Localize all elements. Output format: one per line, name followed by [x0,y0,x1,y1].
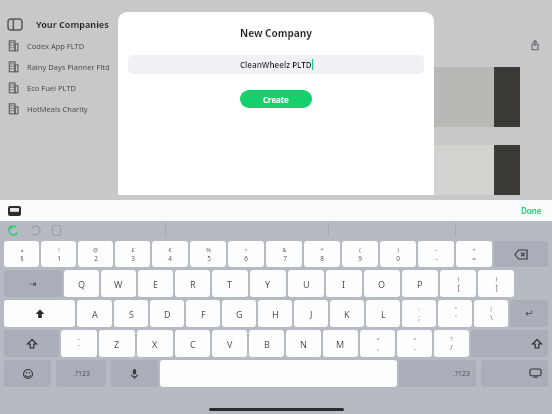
button[interactable]: | [474,300,508,327]
button[interactable]: .?123 [56,360,106,387]
staticText: 7 [283,254,287,263]
button[interactable]: W [101,270,136,297]
staticText: 8 [320,254,324,263]
staticText: – [435,246,438,253]
button[interactable]: Return [510,300,548,327]
staticText: F [201,308,206,320]
other: Keyboard [8,206,21,216]
button[interactable]: V [212,330,247,357]
button[interactable]: Redo [30,225,41,236]
button[interactable]: Paste [52,225,61,236]
button[interactable]: R [175,270,210,297]
button[interactable]: H [258,300,292,327]
button[interactable]: @ [78,241,113,267]
button[interactable]: % [190,241,226,267]
button[interactable]: { [440,270,476,297]
button[interactable]: Hide keyboard [481,360,548,387]
button[interactable]: ? [434,330,469,357]
button[interactable]: Create [240,90,312,108]
staticText: 9 [358,254,362,263]
button[interactable]: Codex App FLTD [0,35,133,56]
button[interactable]: F [186,300,220,327]
button[interactable]: .?123 [399,360,476,387]
button[interactable]: D [150,300,184,327]
button[interactable]: – [418,241,454,267]
button[interactable]: Q [64,270,99,297]
staticText: I [342,278,346,290]
button[interactable]: A [77,300,112,327]
staticText: B [264,338,270,350]
button[interactable]: } [478,270,514,297]
button[interactable]: Caps lock [4,300,75,327]
button[interactable]: Eco Fuel PLTD [0,77,133,98]
staticText: + [118,16,125,32]
button[interactable]: £ [115,241,150,267]
button[interactable]: ( [342,241,378,267]
button[interactable]: ) [380,241,416,267]
staticText: U [303,278,310,290]
staticText: % [206,246,211,253]
button[interactable]: X [137,330,173,357]
button[interactable]: ^ [228,241,264,267]
staticText: ↵ [525,308,534,320]
button[interactable]: : [402,300,436,327]
other: Share [530,40,540,50]
button[interactable]: < [360,330,395,357]
button[interactable]: ! [41,241,76,267]
button[interactable]: Backspace [494,241,548,267]
button[interactable]: 0.63 [141,67,520,127]
staticText: @ [93,246,98,253]
button[interactable]: U [288,270,324,297]
button[interactable]: N [286,330,321,357]
button[interactable]: L [366,300,400,327]
button[interactable]: ~ [61,330,97,357]
button[interactable]: C [175,330,210,357]
staticText: A [92,308,98,320]
button[interactable]: S [114,300,148,327]
staticText: N [300,338,307,350]
staticText: ! [58,246,60,253]
button[interactable]: CleanWheelz PLTD [128,55,424,74]
button[interactable]: G [222,300,256,327]
staticText: Your Companies [36,18,109,30]
button[interactable]: K [330,300,364,327]
button[interactable]: + [456,241,492,267]
button[interactable]: Shift [4,330,59,357]
button[interactable]: * [304,241,340,267]
button[interactable]: " [438,300,472,327]
button[interactable]: Shift [471,330,548,357]
button[interactable]: Tab [4,270,62,297]
button[interactable]: Dictation [111,360,158,387]
button[interactable]: > [397,330,432,357]
button[interactable]: B [249,330,284,357]
staticText: 0 [396,254,400,263]
staticText: § [20,254,24,263]
button[interactable]: & [266,241,302,267]
button[interactable]: Emoji [4,360,51,387]
button[interactable]: Done [511,205,552,216]
button[interactable]: Undo [8,225,19,236]
button[interactable]: J [294,300,328,327]
button[interactable]: £0.00 [141,145,520,195]
button[interactable]: Rainy Days Planner Fltd [0,56,133,77]
button[interactable]: HotMeals Charity [0,98,133,119]
button[interactable]: € [152,241,188,267]
button[interactable]: I [326,270,362,297]
button[interactable]: O [364,270,400,297]
staticText: 1 [57,254,61,263]
button[interactable]: E [138,270,173,297]
button[interactable]: M [323,330,358,357]
button[interactable]: P [402,270,438,297]
button[interactable]: Y [250,270,286,297]
button[interactable]: ± [4,241,39,267]
button[interactable]: Z [99,330,135,357]
button[interactable]: Toggle sidebar [0,13,133,35]
staticText: S [129,308,134,320]
button[interactable]: T [212,270,248,297]
